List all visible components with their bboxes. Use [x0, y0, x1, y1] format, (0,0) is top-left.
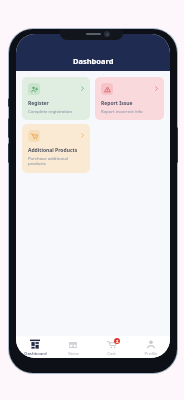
button[interactable]: Store [54, 336, 92, 358]
button[interactable]: Report Issue [95, 77, 164, 120]
staticText: Register [28, 100, 49, 107]
staticText: Profile [144, 350, 158, 356]
staticText: Purchase additional products [28, 155, 85, 167]
staticText: Complete registration [28, 108, 73, 114]
staticText: Report Issue [101, 100, 133, 107]
staticText: Additional Products [28, 147, 78, 154]
staticText: Report incorrect info [101, 108, 143, 114]
button[interactable]: Dashboard [16, 336, 54, 358]
button[interactable]: Profile [131, 336, 170, 358]
staticText: Dashboard [24, 350, 47, 356]
staticText: Dashboard [73, 56, 114, 66]
button[interactable]: Additional Products [22, 124, 90, 173]
staticText: Store [68, 350, 79, 356]
button[interactable]: Register [22, 77, 90, 120]
button[interactable]: 2 [92, 336, 131, 358]
staticText: 2 [116, 339, 119, 344]
staticText: Cart [107, 350, 116, 356]
